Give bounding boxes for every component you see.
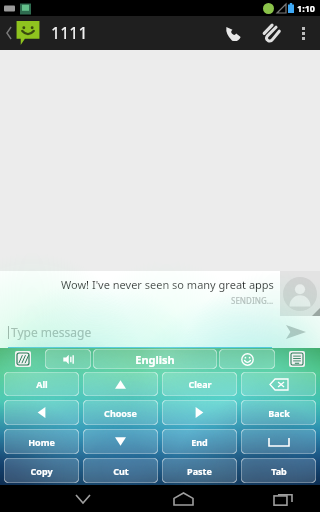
button[interactable]: Send	[272, 316, 320, 348]
staticText: 1:10	[297, 2, 315, 14]
button[interactable]: Down	[83, 429, 158, 454]
button[interactable]: Space	[241, 429, 316, 454]
staticText: Clear	[188, 378, 212, 390]
button[interactable]: Choose	[83, 400, 158, 425]
staticText: Type message	[11, 324, 92, 340]
button[interactable]: All	[4, 372, 79, 396]
button[interactable]: Home	[156, 485, 210, 512]
staticText: Choose	[104, 407, 137, 419]
button[interactable]: Emoji	[219, 349, 275, 369]
button[interactable]: English	[93, 349, 217, 369]
staticText: Wow! I've never seen so many great apps	[61, 277, 274, 292]
staticText: Copy	[30, 465, 53, 477]
button[interactable]: Back	[241, 400, 316, 425]
button[interactable]: Type message	[8, 316, 272, 348]
button[interactable]: End	[162, 429, 237, 454]
button[interactable]: Recent apps	[256, 485, 310, 512]
staticText: Back	[268, 407, 290, 419]
button[interactable]: Up	[83, 372, 158, 396]
staticText: Paste	[187, 465, 212, 477]
button[interactable]: Keyboard settings	[2, 348, 44, 370]
staticText: SENDING...	[231, 295, 274, 306]
staticText: 1111	[51, 22, 88, 44]
staticText: English	[135, 352, 175, 367]
button[interactable]: Tab	[241, 458, 316, 483]
button[interactable]: Cut	[83, 458, 158, 483]
button[interactable]: Call	[214, 16, 252, 50]
button[interactable]: Left	[4, 400, 79, 425]
button[interactable]: Right	[162, 400, 237, 425]
button[interactable]: Copy	[4, 458, 79, 483]
staticText: Home	[28, 436, 55, 448]
button[interactable]: Backspace	[241, 372, 316, 396]
button[interactable]: More options	[290, 16, 316, 50]
staticText: End	[191, 436, 208, 448]
button[interactable]: Switch keyboard	[276, 348, 318, 370]
button[interactable]: Sound	[45, 349, 91, 369]
button[interactable]: Back to conversations	[4, 21, 43, 45]
button[interactable]: Hide keyboard	[56, 485, 110, 512]
button[interactable]: Clear	[162, 372, 237, 396]
button[interactable]: Attach	[252, 16, 290, 50]
staticText: Cut	[113, 465, 129, 477]
staticText: All	[36, 378, 48, 390]
button[interactable]: Paste	[162, 458, 237, 483]
staticText: Tab	[271, 465, 287, 477]
button[interactable]: Home	[4, 429, 79, 454]
